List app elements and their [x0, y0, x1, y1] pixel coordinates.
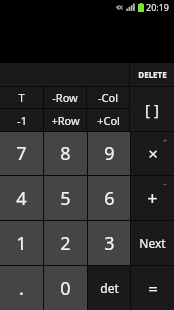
staticText: − [163, 180, 168, 190]
button[interactable]: det [88, 266, 130, 310]
staticText: DELETE [138, 69, 167, 80]
staticText: . [19, 276, 24, 301]
button[interactable]: = [131, 266, 174, 310]
staticText: 5 [60, 186, 71, 211]
staticText: 20:19 [146, 1, 170, 13]
button[interactable]: [ ] [130, 87, 174, 131]
staticText: -Row [52, 90, 78, 105]
staticText: = [148, 277, 158, 300]
staticText: 7 [16, 141, 27, 166]
button[interactable]: 6 [88, 176, 130, 220]
staticText: det [100, 280, 119, 296]
button[interactable]: 1 [0, 221, 43, 265]
staticText: T [18, 90, 25, 105]
button[interactable]: DELETE [130, 63, 174, 86]
staticText: +Row [51, 113, 80, 128]
button[interactable]: T [0, 87, 43, 108]
button[interactable]: 8 [44, 132, 87, 175]
staticText: 2 [60, 231, 71, 256]
staticText: 6 [104, 186, 115, 211]
button[interactable]: 5 [44, 176, 87, 220]
button[interactable]: × [131, 132, 174, 175]
button[interactable]: -Col [87, 87, 129, 108]
button[interactable]: 2 [44, 221, 87, 265]
staticText: 9 [104, 141, 115, 166]
button[interactable]: 4 [0, 176, 43, 220]
staticText: -1 [17, 113, 27, 128]
staticText: 4 [16, 186, 27, 211]
button[interactable]: 9 [88, 132, 130, 175]
button[interactable]: +Col [87, 109, 129, 131]
staticText: 3 [104, 231, 115, 256]
staticText: + [147, 186, 158, 211]
staticText: × [148, 142, 158, 165]
button[interactable]: -1 [0, 109, 43, 131]
staticText: [ ] [145, 99, 159, 119]
button[interactable]: 0 [44, 266, 87, 310]
button[interactable]: -Row [44, 87, 86, 108]
staticText: +Col [97, 113, 120, 128]
button[interactable]: Next [131, 221, 174, 265]
staticText: ÷ [163, 136, 168, 146]
button[interactable]: . [0, 266, 43, 310]
button[interactable]: 7 [0, 132, 43, 175]
staticText: 0 [60, 276, 71, 301]
button[interactable]: +Row [44, 109, 86, 131]
button[interactable]: 3 [88, 221, 130, 265]
staticText: 8 [60, 141, 71, 166]
staticText: -Col [98, 90, 118, 105]
staticText: 1 [16, 231, 27, 256]
staticText: Next [139, 235, 166, 251]
button[interactable]: + [131, 176, 174, 220]
